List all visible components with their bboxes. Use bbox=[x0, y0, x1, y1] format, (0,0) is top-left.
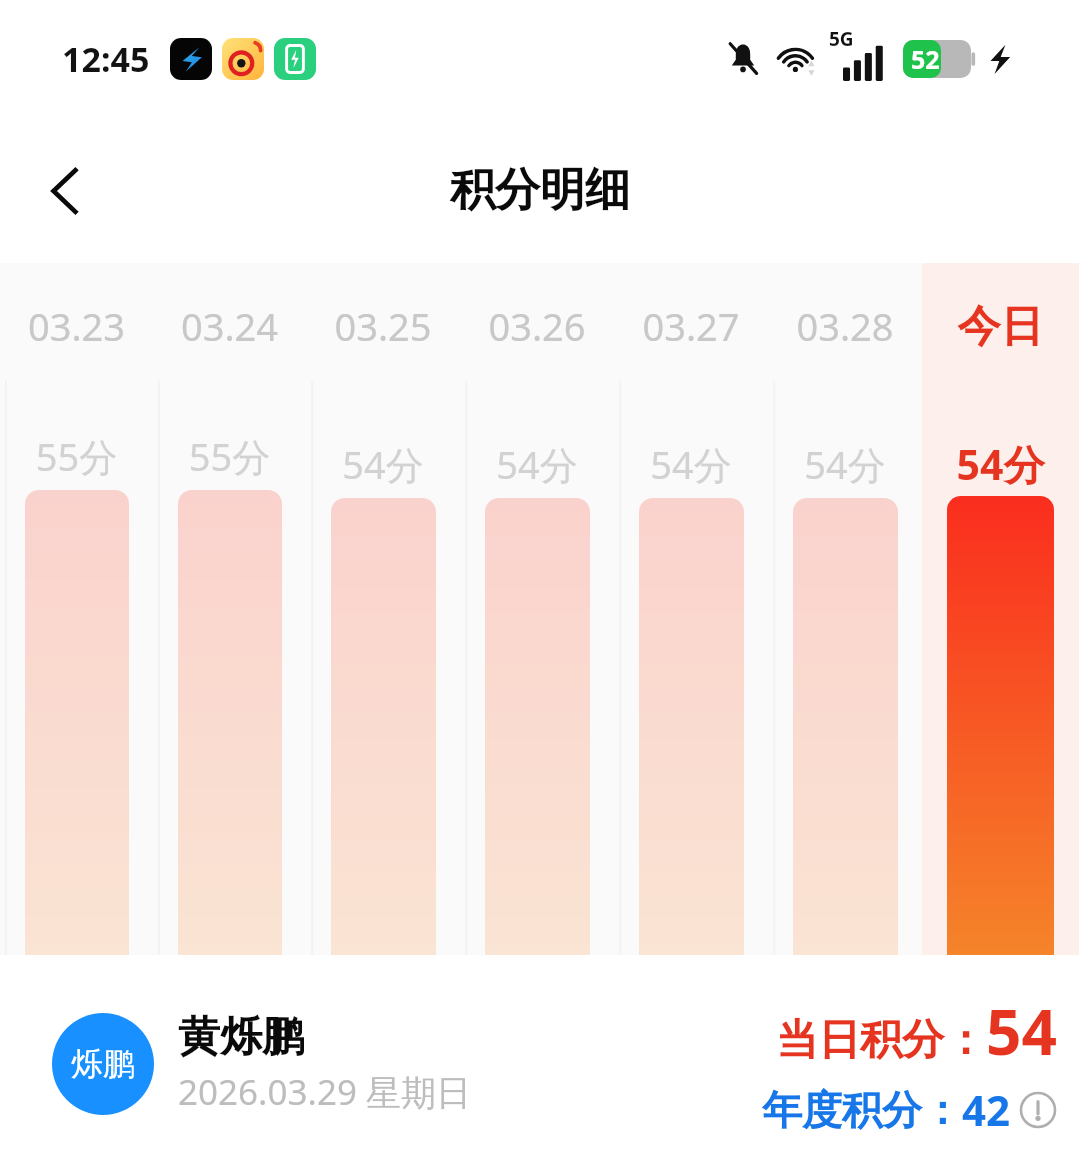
staticText: 黄烁鹏 bbox=[178, 1011, 304, 1064]
staticText: 03.28 bbox=[768, 300, 922, 352]
staticText: 03.23 bbox=[0, 300, 153, 352]
staticText: 2026.03.29 星期日 bbox=[178, 1068, 472, 1116]
button[interactable]: 年度积分： bbox=[762, 1081, 1057, 1138]
button[interactable]: 03.25 bbox=[306, 263, 460, 955]
staticText: 5G bbox=[829, 26, 854, 52]
staticText: 03.26 bbox=[460, 300, 614, 352]
button[interactable]: Back bbox=[24, 149, 108, 233]
staticText: 52 bbox=[911, 42, 940, 76]
staticText: 54分 bbox=[460, 438, 614, 490]
button[interactable]: 03.23 bbox=[0, 263, 153, 955]
button[interactable]: 今日 bbox=[922, 263, 1079, 955]
button[interactable]: 03.26 bbox=[460, 263, 614, 955]
staticText: 03.27 bbox=[614, 300, 768, 352]
button[interactable]: 烁鹏 bbox=[52, 1013, 154, 1115]
staticText: 今日 bbox=[922, 300, 1079, 354]
staticText: 03.25 bbox=[306, 300, 460, 352]
staticText: 42 bbox=[962, 1081, 1011, 1138]
staticText: 55分 bbox=[153, 430, 306, 482]
staticText: 54 bbox=[986, 989, 1057, 1073]
staticText: 当日积分： bbox=[776, 1014, 986, 1067]
button[interactable]: 03.28 bbox=[768, 263, 922, 955]
staticText: 12:45 bbox=[62, 36, 150, 82]
staticText: 积分明细 bbox=[450, 162, 630, 219]
staticText: 54分 bbox=[922, 436, 1079, 492]
staticText: 54分 bbox=[614, 438, 768, 490]
staticText: 54分 bbox=[306, 438, 460, 490]
button[interactable]: 03.24 bbox=[153, 263, 306, 955]
staticText: 54分 bbox=[768, 438, 922, 490]
other: Info bbox=[1019, 1091, 1057, 1129]
staticText: 年度积分： bbox=[762, 1085, 962, 1135]
staticText: 55分 bbox=[0, 430, 153, 482]
staticText: 烁鹏 bbox=[71, 1044, 135, 1084]
staticText: 03.24 bbox=[153, 300, 306, 352]
button[interactable]: 03.27 bbox=[614, 263, 768, 955]
